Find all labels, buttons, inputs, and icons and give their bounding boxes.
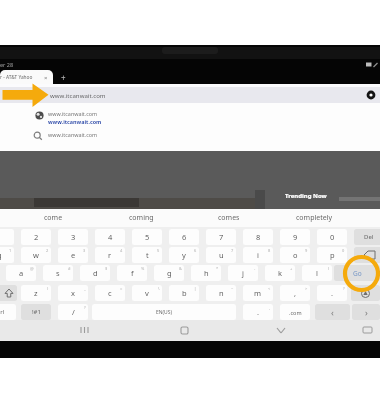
button[interactable]: p xyxy=(317,247,347,263)
button[interactable]: i xyxy=(243,247,273,263)
staticText: .com xyxy=(289,309,302,316)
button[interactable]: ‹ xyxy=(315,304,350,320)
button[interactable]: a xyxy=(6,265,36,281)
button[interactable]: j xyxy=(228,265,258,281)
staticText: i xyxy=(257,250,259,260)
button[interactable]: 9 xyxy=(280,229,310,245)
button[interactable]: come xyxy=(11,209,95,227)
button[interactable]: Clear text xyxy=(364,88,378,102)
button[interactable]: Hide keyboard xyxy=(358,322,376,338)
button[interactable]: c xyxy=(95,285,125,301)
button[interactable]: r - AT&T Yahoo xyxy=(0,70,53,85)
staticText: www.itcanwait.com xyxy=(50,91,106,99)
button[interactable]: w xyxy=(21,247,51,263)
button[interactable]: y xyxy=(169,247,199,263)
button[interactable]: 6 xyxy=(169,229,199,245)
button[interactable]: u xyxy=(206,247,236,263)
button[interactable]: , xyxy=(280,285,310,301)
button[interactable]: m xyxy=(243,285,273,301)
button[interactable]: 3 xyxy=(58,229,88,245)
staticText: b xyxy=(182,288,187,298)
button[interactable]: 5 xyxy=(132,229,162,245)
button[interactable]: b xyxy=(169,285,199,301)
button[interactable]: l xyxy=(302,265,332,281)
button[interactable]: h xyxy=(191,265,221,281)
staticText: www.itcanwait.com xyxy=(48,118,102,125)
button[interactable]: 8 xyxy=(243,229,273,245)
staticText: r xyxy=(108,250,112,260)
button[interactable]: f xyxy=(117,265,147,281)
staticText: e xyxy=(71,250,76,260)
button[interactable]: trl xyxy=(0,304,16,320)
button[interactable]: 2 xyxy=(21,229,51,245)
button[interactable]: EN(US) xyxy=(92,304,236,320)
staticText: 2 xyxy=(46,248,49,253)
button[interactable]: www.itcanwait.com xyxy=(0,129,380,147)
staticText: + xyxy=(290,266,293,271)
staticText: comes xyxy=(218,213,240,223)
staticText: › xyxy=(365,306,368,318)
button[interactable]: www.itcanwait.com xyxy=(0,105,380,127)
staticText: 3 xyxy=(83,248,86,253)
button[interactable] xyxy=(354,247,380,263)
button[interactable]: 7 xyxy=(206,229,236,245)
button[interactable]: comes xyxy=(187,209,271,227)
staticText: www.itcanwait.com xyxy=(48,131,98,138)
button[interactable]: › xyxy=(352,304,380,320)
button[interactable]: z xyxy=(21,285,51,301)
staticText: s xyxy=(56,268,60,278)
staticText: m xyxy=(254,288,262,298)
staticText: 1 xyxy=(9,248,12,253)
button[interactable]: s xyxy=(43,265,73,281)
staticText: # xyxy=(68,266,71,271)
staticText: | xyxy=(194,286,197,291)
staticText: coming xyxy=(129,213,154,223)
button[interactable]: .com xyxy=(280,304,310,320)
staticText: trl xyxy=(0,308,5,316)
staticText: ~ xyxy=(231,286,234,291)
button[interactable]: New tab xyxy=(57,71,70,84)
button[interactable]: e xyxy=(58,247,88,263)
staticText: h xyxy=(204,268,209,278)
staticText: c xyxy=(108,288,112,298)
button[interactable]: !#1 xyxy=(21,304,51,320)
button[interactable]: . xyxy=(317,285,347,301)
button[interactable] xyxy=(351,285,380,301)
staticText: g xyxy=(167,268,172,278)
button[interactable]: . xyxy=(243,304,273,320)
button[interactable]: x xyxy=(58,285,88,301)
staticText: f xyxy=(131,268,134,278)
button[interactable]: d xyxy=(80,265,110,281)
button[interactable]: g xyxy=(154,265,184,281)
button[interactable]: q xyxy=(0,247,14,263)
button[interactable]: Recent apps xyxy=(74,322,94,338)
staticText: 0 xyxy=(342,248,345,253)
button[interactable]: Go xyxy=(334,265,380,281)
button[interactable]: / xyxy=(58,304,88,320)
button[interactable]: Back xyxy=(271,322,291,338)
staticText: EN(US) xyxy=(156,309,172,316)
button[interactable]: Del xyxy=(354,229,380,245)
staticText: 9 xyxy=(293,232,298,242)
button[interactable]: o xyxy=(280,247,310,263)
staticText: @ xyxy=(30,266,34,271)
button[interactable]: r xyxy=(95,247,125,263)
button[interactable]: completely xyxy=(272,209,356,227)
staticText: q xyxy=(0,250,2,260)
button[interactable]: v xyxy=(132,285,162,301)
button[interactable]: 0 xyxy=(317,229,347,245)
button[interactable]: 4 xyxy=(95,229,125,245)
staticText: v xyxy=(145,288,149,298)
button[interactable]: t xyxy=(132,247,162,263)
staticText: k xyxy=(278,268,283,278)
button[interactable]: coming xyxy=(99,209,183,227)
button[interactable] xyxy=(0,285,17,301)
staticText: + xyxy=(61,72,66,83)
button[interactable]: k xyxy=(265,265,295,281)
button[interactable]: Home xyxy=(174,322,194,338)
staticText: 8 xyxy=(268,248,271,253)
staticText: \ xyxy=(158,286,160,291)
button[interactable]: n xyxy=(206,285,236,301)
